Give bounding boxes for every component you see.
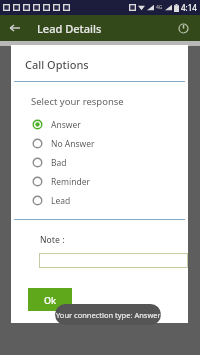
button[interactable]: Reminder — [11, 172, 188, 191]
staticText: 4G — [156, 4, 163, 11]
button[interactable]: Bad — [11, 153, 188, 172]
staticText: No Answer — [51, 138, 95, 150]
staticText: Select your response — [31, 95, 124, 108]
staticText: Ok — [44, 294, 57, 306]
staticText: Note : — [40, 234, 65, 246]
staticText: Lead — [51, 195, 71, 207]
staticText: 4:14 — [181, 2, 197, 13]
staticText: Answer — [51, 119, 81, 131]
staticText: Bad — [51, 157, 67, 169]
button[interactable]: Answer — [11, 115, 188, 134]
button[interactable]: Ok — [28, 288, 72, 311]
staticText: Lead Details — [37, 21, 102, 36]
staticText: Call Options — [25, 57, 89, 72]
button[interactable]: Lead — [11, 191, 188, 210]
button[interactable]: No Answer — [11, 134, 188, 153]
staticText: Reminder — [51, 176, 91, 188]
staticText: Your connection type: Answer — [56, 310, 161, 320]
button[interactable]: Power — [173, 18, 193, 38]
button[interactable]: Back — [5, 18, 25, 38]
button[interactable] — [39, 253, 188, 268]
